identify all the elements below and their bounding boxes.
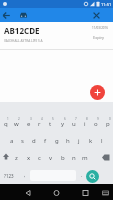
staticText: r — [38, 120, 41, 128]
staticText: ?123 — [4, 173, 14, 179]
button[interactable]: y — [57, 115, 68, 132]
button[interactable]: i — [79, 115, 90, 132]
staticText: s — [21, 137, 24, 145]
staticText: j — [78, 137, 80, 145]
staticText: i — [84, 120, 86, 128]
staticText: Expiry — [60, 35, 104, 40]
staticText: 11:51 — [101, 2, 112, 7]
staticText: u — [72, 120, 76, 128]
staticText: z — [15, 154, 18, 162]
staticText: a — [10, 137, 14, 145]
staticText: l — [101, 137, 103, 145]
button[interactable]: a — [6, 132, 17, 149]
staticText: n — [72, 154, 76, 162]
button[interactable]: b — [57, 149, 68, 166]
button[interactable] — [52, 190, 61, 196]
button[interactable]: c — [34, 149, 45, 166]
staticText: t — [49, 120, 52, 128]
button[interactable] — [90, 85, 105, 100]
staticText: k — [89, 137, 93, 145]
staticText: 3 — [30, 117, 32, 121]
button[interactable]: , — [20, 167, 29, 184]
staticText: 5 — [52, 117, 54, 121]
staticText: p — [106, 120, 110, 128]
staticText: w — [14, 120, 19, 128]
button[interactable]: j — [73, 132, 84, 149]
staticText: y — [61, 120, 65, 128]
button[interactable]: x — [23, 149, 34, 166]
staticText: f — [44, 137, 47, 145]
staticText: m — [82, 154, 88, 162]
button[interactable] — [19, 11, 28, 20]
staticText: . — [81, 172, 83, 179]
button[interactable]: z — [11, 149, 22, 166]
button[interactable]: o — [90, 115, 101, 132]
button[interactable]: u — [68, 115, 79, 132]
staticText: h — [66, 137, 70, 145]
staticText: 9 — [97, 117, 99, 121]
staticText: x — [27, 154, 31, 162]
staticText: 7 — [75, 117, 77, 121]
button[interactable]: e — [23, 115, 34, 132]
button[interactable] — [1, 149, 11, 166]
button[interactable]: k — [85, 132, 96, 149]
staticText: 0 — [109, 117, 111, 121]
button[interactable]: n — [68, 149, 79, 166]
staticText: c — [38, 154, 41, 162]
staticText: VAUXHALL ASTRA LIFE S A — [4, 39, 43, 43]
staticText: v — [49, 154, 53, 162]
staticText: o — [94, 120, 98, 128]
button[interactable]: r — [34, 115, 45, 132]
button[interactable]: q — [0, 115, 11, 132]
staticText: b — [61, 154, 65, 162]
staticText: e — [27, 120, 31, 128]
staticText: q — [4, 120, 8, 128]
button[interactable]: s — [17, 132, 28, 149]
button[interactable]: f — [40, 132, 51, 149]
staticText: 11/03/2016 — [60, 26, 108, 30]
staticText: 1 — [7, 117, 9, 121]
button[interactable] — [92, 11, 101, 20]
button[interactable]: t — [45, 115, 56, 132]
staticText: 2 — [18, 117, 20, 121]
staticText: , — [24, 172, 26, 179]
button[interactable] — [86, 170, 99, 183]
button[interactable]: v — [45, 149, 56, 166]
button[interactable]: h — [62, 132, 73, 149]
button[interactable] — [99, 149, 112, 166]
button[interactable]: m — [79, 149, 90, 166]
button[interactable] — [2, 11, 11, 20]
staticText: 6 — [64, 117, 66, 121]
staticText: g — [55, 137, 59, 145]
button[interactable]: g — [51, 132, 62, 149]
staticText: AB12CDE — [4, 25, 40, 36]
button[interactable] — [81, 190, 90, 196]
button[interactable]: p — [102, 115, 113, 132]
button[interactable]: . — [77, 167, 86, 184]
button[interactable]: w — [11, 115, 22, 132]
button[interactable]: d — [28, 132, 39, 149]
button[interactable]: l — [96, 132, 107, 149]
button[interactable]: ?123 — [0, 167, 18, 184]
button[interactable] — [101, 190, 110, 196]
staticText: 8 — [86, 117, 88, 121]
staticText: 4 — [41, 117, 43, 121]
staticText: d — [32, 137, 36, 145]
button[interactable] — [24, 190, 33, 196]
